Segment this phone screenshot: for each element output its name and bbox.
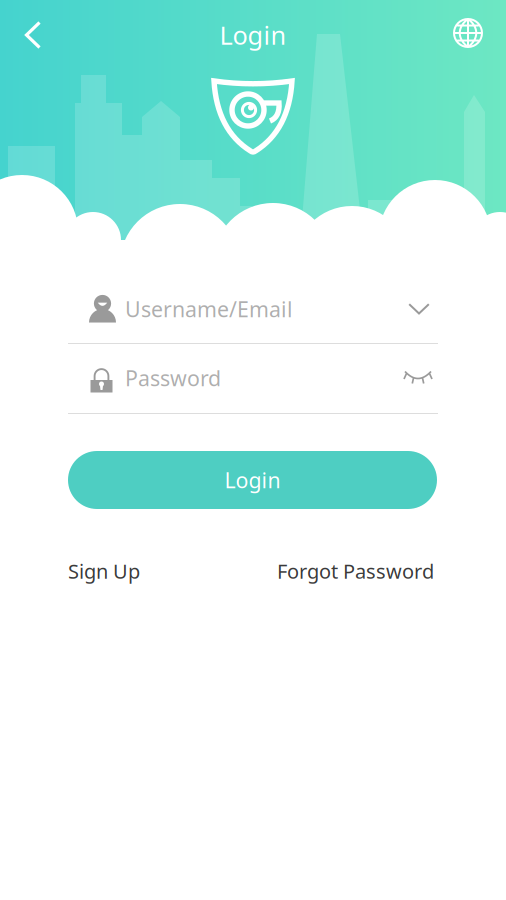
staticText: Forgot Password (277, 558, 434, 584)
staticText: Password (125, 364, 221, 392)
staticText: Login (224, 466, 280, 494)
button[interactable]: Back (6, 8, 60, 62)
staticText: Username/Email (125, 295, 293, 323)
staticText: Sign Up (68, 558, 140, 584)
button[interactable]: Forgot Password (277, 558, 434, 584)
button[interactable]: Login (68, 451, 437, 509)
staticText: Login (219, 18, 286, 52)
button[interactable]: Sign Up (68, 558, 140, 584)
button[interactable]: Language (441, 6, 495, 60)
